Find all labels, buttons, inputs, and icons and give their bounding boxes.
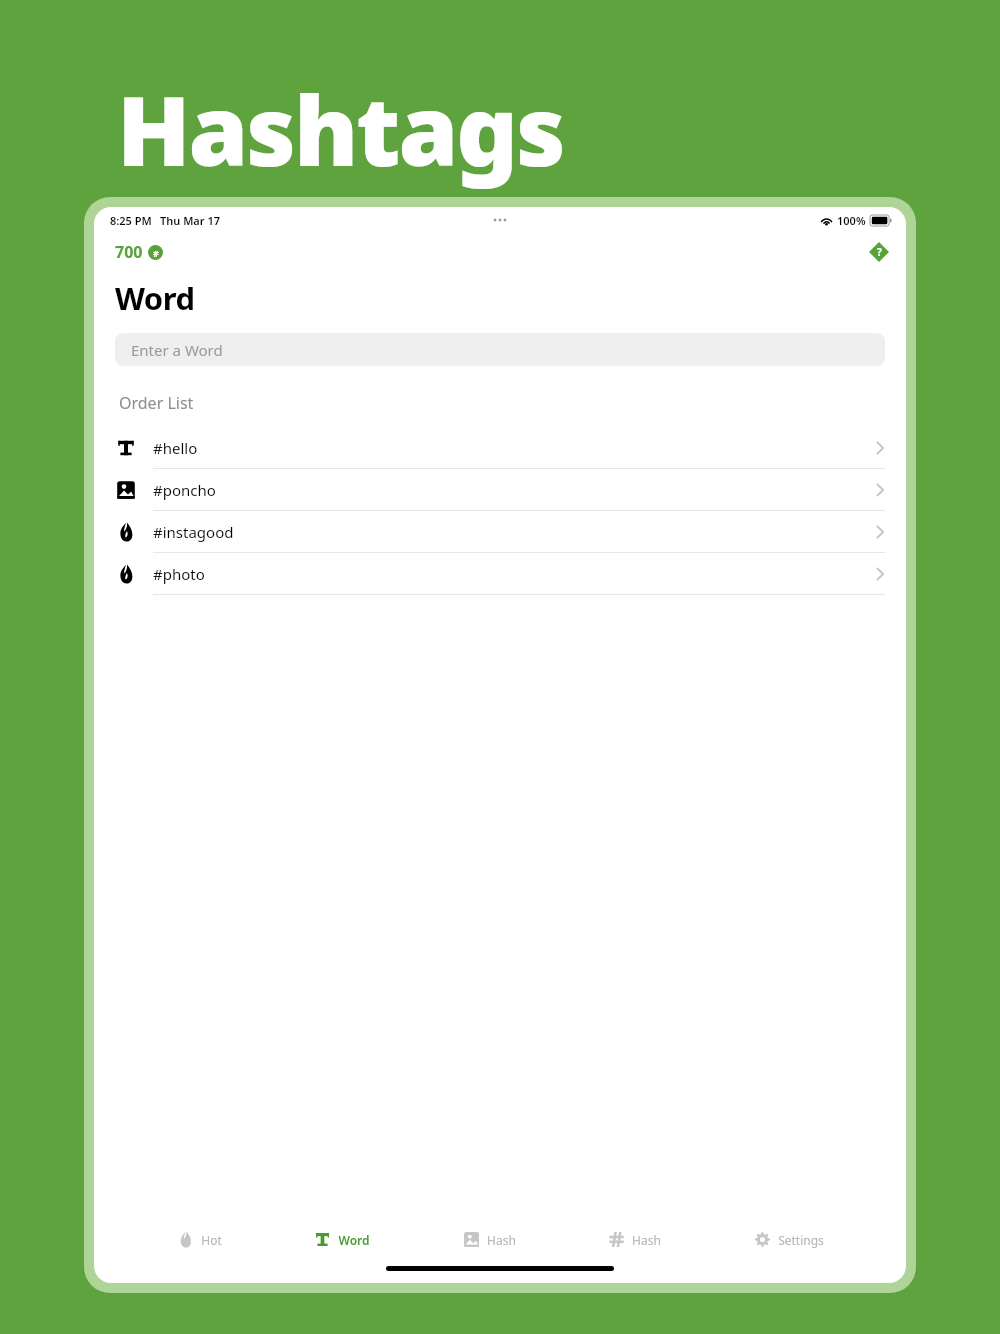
button[interactable]: Hot: [167, 1225, 232, 1254]
button[interactable]: Hash: [598, 1225, 671, 1254]
staticText: Hash: [632, 1232, 661, 1248]
button[interactable]: Hash: [453, 1225, 526, 1254]
staticText: #poncho: [153, 480, 216, 500]
button[interactable]: Word: [304, 1225, 380, 1254]
staticText: 100%: [837, 213, 866, 228]
button[interactable]: #instagood: [94, 511, 906, 553]
staticText: Order List: [119, 392, 194, 414]
button[interactable]: #poncho: [94, 469, 906, 511]
staticText: Settings: [778, 1232, 824, 1248]
staticText: #photo: [153, 564, 205, 584]
button[interactable]: #hello: [94, 427, 906, 469]
staticText: 8:25 PM: [110, 213, 152, 228]
staticText: ?: [877, 245, 882, 259]
button[interactable]: Settings: [744, 1225, 834, 1254]
staticText: Hot: [201, 1232, 222, 1248]
button[interactable]: #photo: [94, 553, 906, 595]
staticText: #hello: [153, 438, 198, 458]
staticText: Word: [338, 1232, 370, 1248]
button[interactable]: 700: [115, 241, 163, 263]
staticText: Hash: [487, 1232, 516, 1248]
staticText: #: [153, 247, 159, 259]
staticText: 700: [115, 241, 143, 263]
staticText: Word: [115, 277, 195, 319]
staticText: Enter a Word: [131, 340, 223, 360]
staticText: #instagood: [153, 522, 234, 542]
button[interactable]: Enter a Word: [115, 333, 885, 366]
staticText: Hashtags: [117, 63, 564, 194]
button[interactable]: Help: [866, 239, 892, 265]
staticText: Thu Mar 17: [160, 213, 221, 228]
